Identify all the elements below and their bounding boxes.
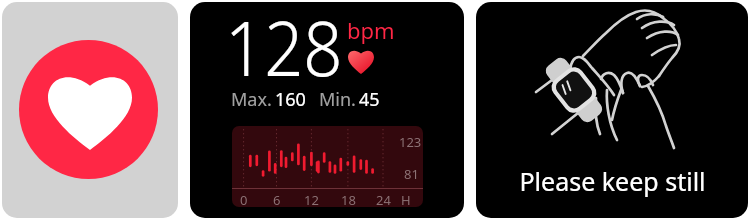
button[interactable]: 128 xyxy=(190,2,464,218)
staticText: Max. xyxy=(231,87,272,112)
staticText: 81 xyxy=(404,165,419,183)
staticText: 18 xyxy=(341,191,356,207)
staticText: Please keep still xyxy=(519,164,706,198)
staticText: 6 xyxy=(273,191,281,207)
staticText: bpm xyxy=(347,15,395,45)
staticText: 160 xyxy=(275,87,306,112)
staticText: H xyxy=(401,191,411,207)
staticText: Min. xyxy=(319,87,356,112)
button[interactable]: Please keep still xyxy=(476,2,748,218)
staticText: 45 xyxy=(359,87,380,112)
staticText: 0 xyxy=(240,191,248,207)
staticText: 128 xyxy=(225,2,343,98)
staticText: 12 xyxy=(304,191,319,207)
staticText: 24 xyxy=(376,191,391,207)
staticText: 123 xyxy=(399,133,422,151)
button[interactable]: Heart rate xyxy=(2,2,178,218)
